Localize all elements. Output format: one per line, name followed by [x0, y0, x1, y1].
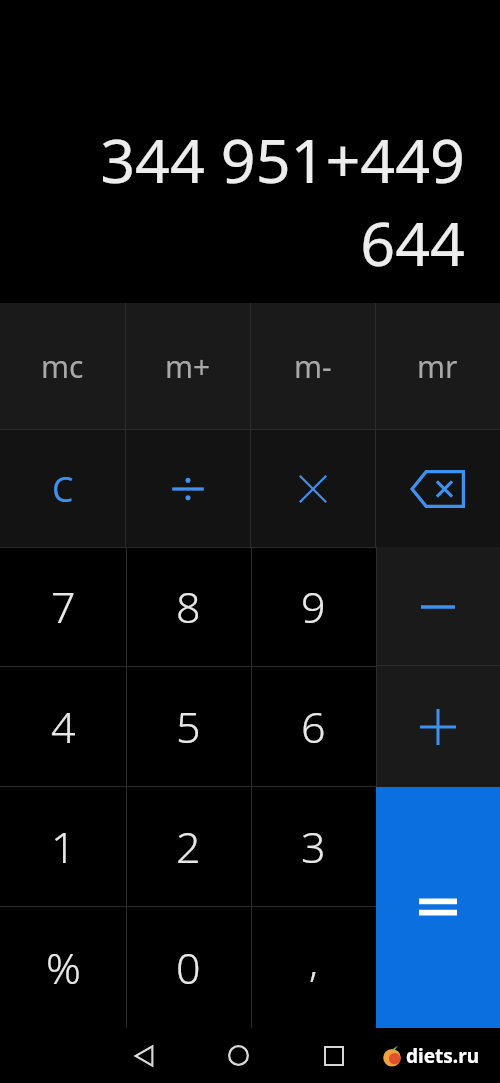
button[interactable]: 9	[251, 547, 376, 666]
button[interactable]: 0	[126, 906, 251, 1028]
button[interactable]: 5	[126, 666, 251, 786]
button[interactable]: Recents	[286, 1028, 381, 1083]
button[interactable]: Backspace	[375, 430, 500, 547]
button[interactable]: mr	[375, 303, 500, 430]
staticText: 7	[51, 577, 76, 636]
staticText: 344 951+449 644	[0, 118, 465, 284]
staticText: %	[46, 938, 81, 997]
button[interactable]: m+	[125, 303, 250, 430]
staticText: m-	[294, 346, 332, 387]
button[interactable]: ,	[251, 906, 376, 1028]
staticText: m+	[165, 346, 211, 387]
staticText: 1	[51, 817, 76, 876]
button[interactable]: Minus	[376, 547, 500, 666]
staticText: 6	[301, 697, 326, 756]
staticText: 3	[301, 817, 326, 876]
staticText: diets.ru	[406, 1043, 479, 1069]
button[interactable]: Equals	[376, 787, 500, 1028]
staticText: ,	[309, 934, 318, 988]
button[interactable]: m-	[250, 303, 375, 430]
button[interactable]: 2	[126, 786, 251, 906]
staticText: mc	[41, 346, 84, 387]
button[interactable]: C	[0, 430, 125, 547]
staticText: 4	[51, 697, 76, 756]
button[interactable]: mc	[0, 303, 125, 430]
button[interactable]: Divide	[125, 430, 250, 547]
button[interactable]: 8	[126, 547, 251, 666]
staticText: 2	[176, 817, 201, 876]
button[interactable]: 6	[251, 666, 376, 786]
button[interactable]: 7	[0, 547, 126, 666]
button[interactable]: Plus	[376, 666, 500, 787]
staticText: 9	[301, 577, 326, 636]
staticText: 8	[176, 577, 201, 636]
staticText: C	[52, 466, 74, 512]
button[interactable]: 1	[0, 786, 126, 906]
staticText: 5	[176, 697, 201, 756]
staticText: 0	[176, 938, 201, 997]
button[interactable]: Back	[96, 1028, 191, 1083]
button[interactable]: Multiply	[250, 430, 375, 547]
button[interactable]: %	[0, 906, 126, 1028]
staticText: mr	[417, 346, 458, 387]
button[interactable]: 3	[251, 786, 376, 906]
button[interactable]: 4	[0, 666, 126, 786]
button[interactable]: Home	[191, 1028, 286, 1083]
